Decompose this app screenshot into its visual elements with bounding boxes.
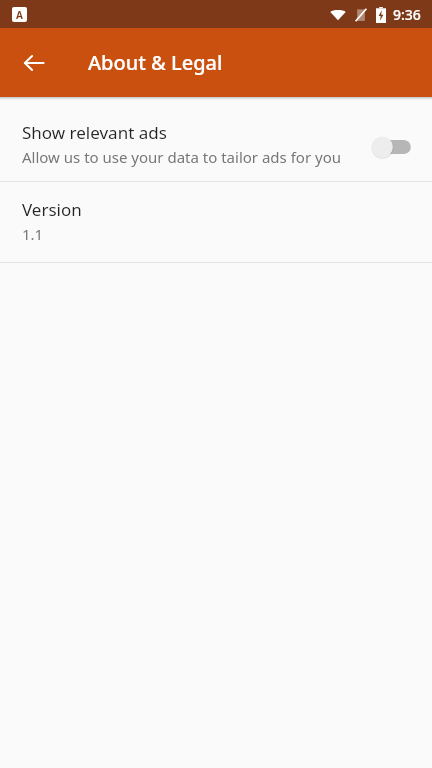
button[interactable]: Show relevant ads toggle [368,131,416,163]
staticText: About & Legal [88,49,223,76]
button[interactable]: Back [8,37,60,89]
button[interactable]: Version [0,182,432,262]
staticText: 9:36 [393,5,421,24]
staticText: Allow us to use your data to tailor ads … [22,147,341,167]
staticText: Version [22,198,82,221]
staticText: A [16,8,23,22]
button[interactable]: Show relevant ads [0,111,432,181]
staticText: Show relevant ads [22,121,167,144]
staticText: 1.1 [22,224,44,244]
